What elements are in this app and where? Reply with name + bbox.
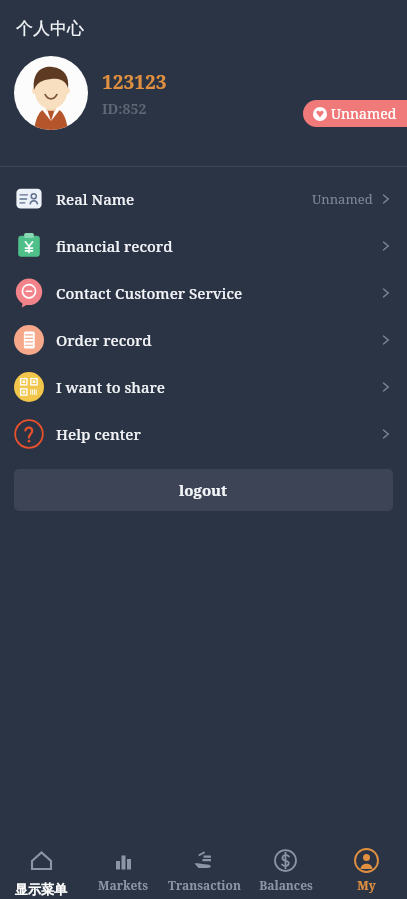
staticText: 个人中心 — [16, 18, 84, 39]
staticText: Real Name — [56, 189, 135, 209]
staticText: Transaction — [168, 877, 241, 893]
button[interactable]: Real Name — [0, 175, 407, 222]
button[interactable]: Help center — [0, 410, 407, 457]
staticText: Unnamed — [331, 104, 397, 123]
staticText: 显示菜单 — [15, 881, 67, 897]
staticText: Order record — [56, 330, 152, 350]
staticText: My — [357, 877, 376, 893]
button[interactable]: Balances — [245, 837, 326, 899]
staticText: I want to share — [56, 377, 166, 397]
button[interactable]: Markets — [82, 837, 164, 899]
staticText: Balances — [259, 877, 313, 893]
staticText: ID:852 — [102, 99, 147, 118]
button[interactable]: logout — [14, 469, 393, 511]
button[interactable]: I want to share — [0, 363, 407, 410]
staticText: 123123 — [102, 69, 167, 95]
button[interactable]: Verification status Unnamed — [303, 100, 407, 127]
staticText: financial record — [56, 236, 173, 256]
button[interactable]: Transaction — [164, 837, 245, 899]
staticText: logout — [179, 480, 228, 500]
button[interactable]: Order record — [0, 316, 407, 363]
staticText: Help center — [56, 424, 141, 444]
staticText: Markets — [98, 877, 148, 893]
staticText: Unnamed — [312, 190, 373, 208]
staticText: Contact Customer Service — [56, 283, 243, 303]
button[interactable]: financial record — [0, 222, 407, 269]
button[interactable]: Contact Customer Service — [0, 269, 407, 316]
button[interactable]: 显示菜单 — [0, 837, 82, 899]
button[interactable]: My — [326, 837, 407, 899]
